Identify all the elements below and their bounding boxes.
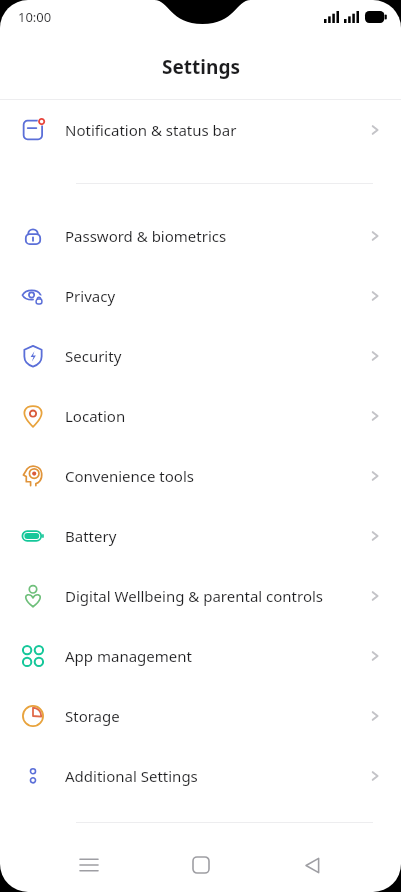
staticText: Additional Settings: [65, 766, 349, 786]
button[interactable]: Location: [0, 386, 401, 446]
button[interactable]: Password & biometrics: [0, 206, 401, 266]
button[interactable]: App management: [0, 626, 401, 686]
staticText: Security: [65, 346, 349, 366]
staticText: App management: [65, 646, 349, 666]
button[interactable]: Convenience tools: [0, 446, 401, 506]
button[interactable]: Digital Wellbeing & parental controls: [0, 566, 401, 626]
button[interactable]: Security: [0, 326, 401, 386]
button[interactable]: Additional Settings: [0, 746, 401, 806]
staticText: Password & biometrics: [65, 226, 349, 246]
button[interactable]: Home: [178, 842, 224, 888]
staticText: Settings: [162, 54, 240, 80]
button[interactable]: Privacy: [0, 266, 401, 326]
staticText: 10:00: [18, 8, 52, 26]
staticText: Privacy: [65, 286, 349, 306]
staticText: Notification & status bar: [65, 120, 349, 140]
button[interactable]: Battery: [0, 506, 401, 566]
staticText: Location: [65, 406, 349, 426]
staticText: Digital Wellbeing & parental controls: [65, 586, 349, 606]
staticText: Storage: [65, 706, 349, 726]
button[interactable]: Storage: [0, 686, 401, 746]
button[interactable]: Back: [289, 842, 335, 888]
button[interactable]: Recent apps: [66, 842, 112, 888]
button[interactable]: Notification & status bar: [0, 100, 401, 160]
staticText: Convenience tools: [65, 466, 349, 486]
staticText: Battery: [65, 526, 349, 546]
